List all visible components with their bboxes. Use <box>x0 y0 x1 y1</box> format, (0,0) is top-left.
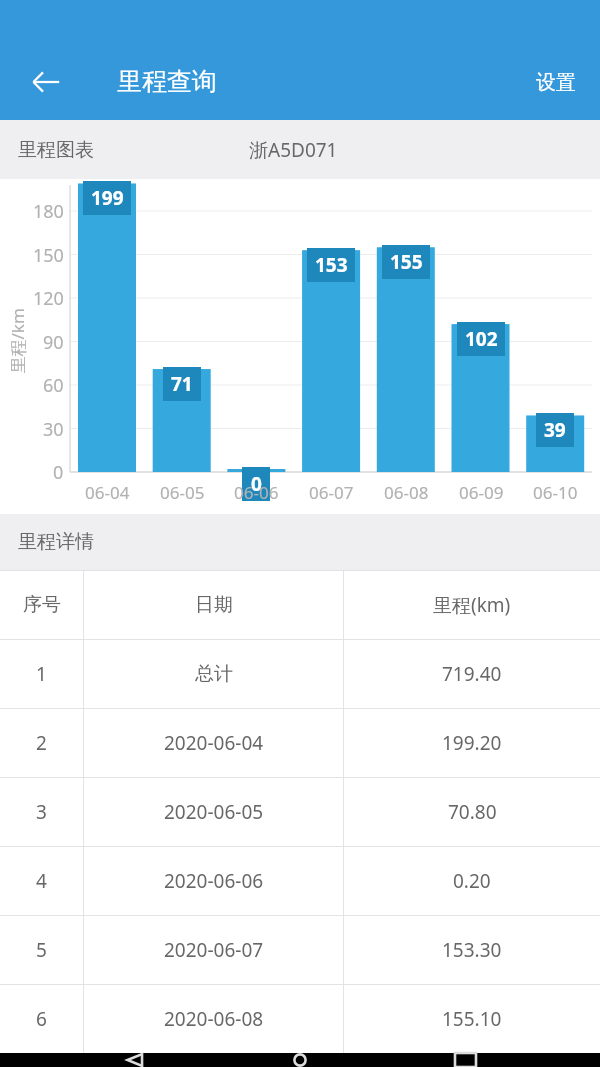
staticText: 5 <box>36 937 47 963</box>
staticText: 0.20 <box>453 868 491 894</box>
staticText: 2020-06-05 <box>164 799 264 825</box>
button[interactable]: 5 <box>0 916 600 984</box>
staticText: 06-04 <box>85 481 130 504</box>
staticText: 里程图表 <box>18 138 94 162</box>
staticText: 06-09 <box>459 481 504 504</box>
staticText: 39 <box>544 417 566 443</box>
staticText: 153.30 <box>442 937 502 963</box>
staticText: 总计 <box>195 662 233 686</box>
staticText: 2020-06-07 <box>164 937 264 963</box>
button[interactable]: 设置 <box>522 56 590 108</box>
staticText: 日期 <box>195 593 233 617</box>
staticText: 3 <box>36 799 47 825</box>
staticText: 150 <box>33 243 64 268</box>
staticText: 155.10 <box>442 1006 502 1032</box>
staticText: 里程查询 <box>117 66 217 97</box>
staticText: 0 <box>53 460 64 485</box>
staticText: 2020-06-06 <box>164 868 264 894</box>
staticText: 06-07 <box>309 481 354 504</box>
button[interactable]: 3 <box>0 778 600 846</box>
staticText: 120 <box>33 286 64 311</box>
staticText: 199.20 <box>442 730 502 756</box>
staticText: 2 <box>36 730 47 756</box>
staticText: 1 <box>36 661 47 687</box>
staticText: 里程详情 <box>18 530 94 554</box>
staticText: 0 <box>251 471 262 497</box>
button[interactable]: Back <box>105 1053 165 1067</box>
button[interactable]: 4 <box>0 847 600 915</box>
staticText: 里程(km) <box>433 592 511 618</box>
staticText: 06-10 <box>533 481 578 504</box>
staticText: 180 <box>33 199 64 224</box>
staticText: 60 <box>43 373 64 398</box>
staticText: 2020-06-08 <box>164 1006 264 1032</box>
button[interactable]: 2 <box>0 709 600 777</box>
staticText: 153 <box>315 252 348 278</box>
staticText: 155 <box>390 249 423 275</box>
staticText: 719.40 <box>442 661 502 687</box>
staticText: 6 <box>36 1006 47 1032</box>
staticText: 06-08 <box>384 481 429 504</box>
button[interactable]: Back <box>18 54 74 110</box>
staticText: 06-06 <box>234 481 279 504</box>
staticText: 199 <box>91 185 124 211</box>
button[interactable]: Home <box>270 1053 330 1067</box>
staticText: 设置 <box>536 70 576 95</box>
staticText: 序号 <box>23 593 61 617</box>
staticText: 06-05 <box>160 481 205 504</box>
staticText: 4 <box>36 868 47 894</box>
staticText: 浙A5D071 <box>249 137 338 163</box>
button[interactable]: 1 <box>0 640 600 708</box>
button[interactable]: 6 <box>0 985 600 1053</box>
staticText: 90 <box>43 330 64 355</box>
staticText: 70.80 <box>448 799 497 825</box>
staticText: 102 <box>465 326 498 352</box>
button[interactable]: 序号 <box>0 571 600 639</box>
staticText: 里程/km <box>5 307 28 373</box>
staticText: 71 <box>171 371 193 397</box>
staticText: 2020-06-04 <box>164 730 264 756</box>
staticText: 30 <box>43 417 64 442</box>
button[interactable]: Recents <box>435 1053 495 1067</box>
